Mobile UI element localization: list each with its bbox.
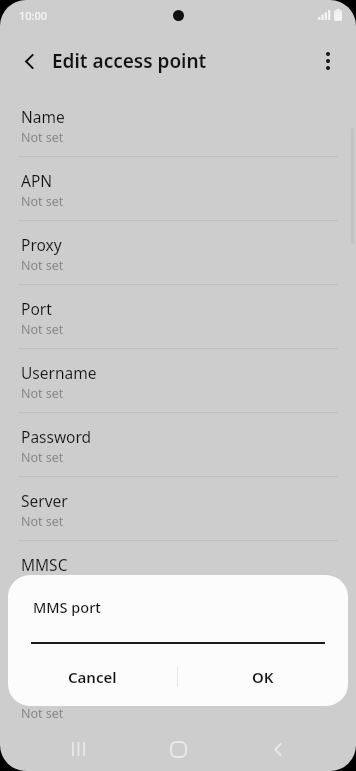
button[interactable]: Back bbox=[256, 727, 300, 771]
staticText: Server bbox=[21, 490, 68, 511]
staticText: Not set bbox=[21, 257, 64, 274]
staticText: Username bbox=[21, 362, 97, 383]
staticText: Not set bbox=[21, 193, 64, 210]
button[interactable]: Password bbox=[0, 412, 356, 476]
button[interactable]: More options bbox=[308, 41, 348, 81]
staticText: Edit access point bbox=[52, 48, 207, 74]
staticText: Not set bbox=[21, 513, 64, 530]
button[interactable]: APN bbox=[0, 156, 356, 220]
button[interactable]: Name bbox=[0, 92, 356, 156]
button[interactable]: Server bbox=[0, 476, 356, 540]
button[interactable]: MMS proxy bbox=[0, 604, 356, 668]
staticText: Not set bbox=[21, 705, 64, 722]
staticText: Not set bbox=[21, 449, 64, 466]
button[interactable]: Recent apps bbox=[56, 727, 100, 771]
staticText: Proxy bbox=[21, 234, 62, 255]
staticText: MMS port bbox=[21, 682, 93, 703]
staticText: Password bbox=[21, 426, 92, 447]
button[interactable]: MMSC bbox=[0, 540, 356, 604]
button[interactable]: Cancel bbox=[8, 657, 177, 697]
button[interactable]: MMS port bbox=[0, 668, 356, 732]
staticText: Not set bbox=[21, 641, 64, 658]
button[interactable]: Port bbox=[0, 284, 356, 348]
staticText: Cancel bbox=[68, 667, 117, 687]
staticText: MMS port bbox=[33, 597, 101, 617]
staticText: MMSC bbox=[21, 554, 68, 575]
staticText: Not set bbox=[21, 321, 64, 338]
staticText: Port bbox=[21, 298, 52, 319]
staticText: APN bbox=[21, 170, 53, 191]
staticText: Name bbox=[21, 106, 65, 127]
staticText: Not set bbox=[21, 385, 64, 402]
button[interactable]: OK bbox=[178, 657, 348, 697]
staticText: 10:00 bbox=[19, 8, 48, 23]
button[interactable]: Home bbox=[156, 727, 200, 771]
button[interactable]: Username bbox=[0, 348, 356, 412]
button[interactable]: Back bbox=[10, 41, 50, 81]
staticText: OK bbox=[252, 667, 274, 687]
staticText: Not set bbox=[21, 129, 64, 146]
button[interactable]: Proxy bbox=[0, 220, 356, 284]
